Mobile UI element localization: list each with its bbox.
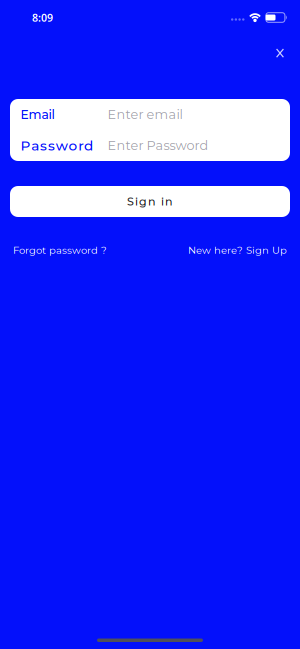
button[interactable]: Sign in — [10, 186, 290, 217]
staticText: Forgot password ? — [13, 244, 107, 256]
staticText: New here? Sign Up — [188, 244, 287, 256]
staticText: Enter Password — [107, 138, 208, 153]
staticText: Sign in — [127, 195, 173, 208]
staticText: Password — [20, 137, 93, 154]
staticText: 8:09 — [32, 10, 53, 25]
staticText: Enter email — [107, 107, 182, 122]
button[interactable]: Close — [273, 46, 287, 60]
button[interactable]: Forgot password ? — [13, 244, 107, 256]
staticText: Email — [20, 107, 54, 122]
button[interactable]: Password — [10, 130, 290, 161]
button[interactable]: Email — [10, 99, 290, 130]
button[interactable]: New here? Sign Up — [188, 244, 287, 256]
